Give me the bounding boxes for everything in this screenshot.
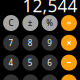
- staticText: %: [46, 18, 53, 28]
- staticText: 8: [28, 37, 33, 48]
- staticText: 4: [8, 57, 13, 68]
- button[interactable]: 4: [3, 55, 19, 71]
- button[interactable]: Toggle sign: [22, 15, 38, 31]
- button[interactable]: 3: [42, 74, 58, 80]
- button[interactable]: Add: [61, 74, 77, 80]
- button[interactable]: Clear: [3, 15, 19, 31]
- button[interactable]: 9: [42, 35, 58, 51]
- staticText: 9: [47, 37, 52, 48]
- button[interactable]: Multiply: [61, 35, 77, 51]
- staticText: ±: [28, 18, 33, 28]
- button[interactable]: 1: [3, 74, 19, 80]
- staticText: C: [8, 18, 13, 28]
- button[interactable]: 5: [22, 55, 38, 71]
- button[interactable]: Divide: [61, 15, 77, 31]
- button[interactable]: 6: [42, 55, 58, 71]
- button[interactable]: 2: [22, 74, 38, 80]
- staticText: 5: [28, 57, 33, 68]
- button[interactable]: Percent: [42, 15, 58, 31]
- staticText: 12,544: [22, 0, 77, 17]
- button[interactable]: Subtract: [61, 55, 77, 71]
- button[interactable]: 7: [3, 35, 19, 51]
- staticText: 6: [47, 57, 52, 68]
- button[interactable]: 8: [22, 35, 38, 51]
- staticText: 7: [8, 37, 13, 48]
